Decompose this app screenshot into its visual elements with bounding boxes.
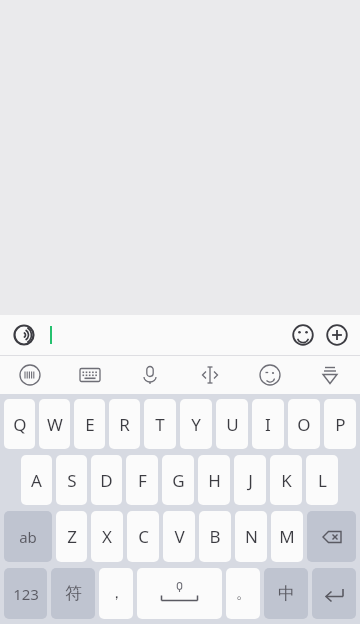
button[interactable]: Z bbox=[56, 511, 87, 562]
button[interactable]: Enter bbox=[312, 568, 356, 619]
staticText: Q bbox=[13, 413, 27, 436]
button[interactable]: M bbox=[271, 511, 303, 562]
staticText: F bbox=[138, 469, 147, 492]
staticText: M bbox=[279, 525, 295, 548]
staticText: 123 bbox=[13, 584, 39, 604]
button[interactable]: C bbox=[127, 511, 159, 562]
staticText: E bbox=[85, 413, 95, 436]
staticText: R bbox=[119, 413, 130, 436]
button[interactable]: V bbox=[163, 511, 195, 562]
button[interactable]: Sticker bbox=[240, 356, 300, 394]
button[interactable]: G bbox=[162, 455, 194, 505]
staticText: T bbox=[155, 413, 165, 436]
staticText: H bbox=[208, 469, 221, 492]
staticText: B bbox=[209, 525, 221, 548]
button[interactable]: Q bbox=[4, 399, 35, 449]
button[interactable]: W bbox=[39, 399, 70, 449]
button[interactable]: Collapse bbox=[300, 356, 360, 394]
button[interactable]: T bbox=[144, 399, 176, 449]
staticText: X bbox=[102, 525, 112, 548]
button[interactable]: B bbox=[199, 511, 231, 562]
button[interactable]: J bbox=[234, 455, 266, 505]
staticText: C bbox=[138, 525, 149, 548]
button[interactable]: S bbox=[56, 455, 87, 505]
button[interactable]: ， bbox=[99, 568, 133, 619]
button[interactable]: 中 bbox=[264, 568, 308, 619]
staticText: 中 bbox=[278, 583, 295, 604]
button[interactable]: N bbox=[235, 511, 267, 562]
button[interactable]: Input method bbox=[0, 356, 60, 394]
button[interactable]: I bbox=[252, 399, 284, 449]
staticText: U bbox=[226, 413, 239, 436]
button[interactable]: 123 bbox=[4, 568, 47, 619]
staticText: L bbox=[318, 469, 327, 492]
button[interactable]: 符 bbox=[51, 568, 95, 619]
button[interactable]: E bbox=[74, 399, 105, 449]
staticText: A bbox=[31, 469, 42, 492]
button[interactable]: P bbox=[324, 399, 356, 449]
staticText: S bbox=[67, 469, 77, 492]
button[interactable]: X bbox=[91, 511, 123, 562]
button[interactable]: Backspace bbox=[307, 511, 356, 562]
button[interactable]: ab bbox=[4, 511, 52, 562]
button[interactable]: K bbox=[270, 455, 302, 505]
staticText: G bbox=[172, 469, 185, 492]
button[interactable]: A bbox=[21, 455, 52, 505]
staticText: I bbox=[265, 413, 271, 436]
button[interactable]: Cursor bbox=[180, 356, 240, 394]
staticText: 。 bbox=[236, 584, 251, 603]
button[interactable]: 。 bbox=[226, 568, 260, 619]
staticText: 符 bbox=[65, 583, 82, 604]
staticText: ab bbox=[19, 527, 37, 547]
staticText: N bbox=[245, 525, 258, 548]
staticText: K bbox=[281, 469, 292, 492]
button[interactable]: F bbox=[126, 455, 158, 505]
button[interactable]: R bbox=[109, 399, 140, 449]
button[interactable]: Add bbox=[320, 318, 354, 352]
button[interactable]: Keyboard bbox=[60, 356, 120, 394]
staticText: P bbox=[335, 413, 346, 436]
staticText: O bbox=[297, 413, 311, 436]
staticText: Z bbox=[67, 525, 77, 548]
button[interactable]: Emoji bbox=[286, 318, 320, 352]
staticText: J bbox=[248, 469, 253, 492]
staticText: D bbox=[100, 469, 113, 492]
button[interactable]: Y bbox=[180, 399, 212, 449]
button[interactable]: L bbox=[306, 455, 338, 505]
button[interactable]: H bbox=[198, 455, 230, 505]
button[interactable]: D bbox=[91, 455, 122, 505]
staticText: ， bbox=[109, 584, 124, 603]
staticText: W bbox=[47, 413, 63, 436]
staticText: Y bbox=[191, 413, 201, 436]
button[interactable]: Voice input bbox=[8, 319, 40, 351]
button[interactable]: Voice bbox=[120, 356, 180, 394]
button[interactable]: U bbox=[216, 399, 248, 449]
staticText: V bbox=[174, 525, 185, 548]
button[interactable]: O bbox=[288, 399, 320, 449]
button[interactable]: Space bbox=[137, 568, 222, 619]
